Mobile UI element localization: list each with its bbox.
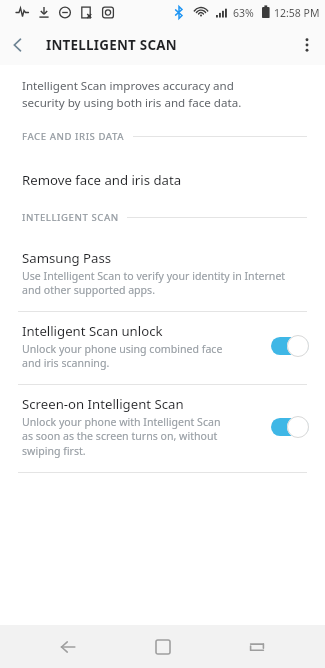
button[interactable]: Screen-on Intelligent Scan bbox=[0, 385, 325, 472]
staticText: 63% bbox=[233, 6, 254, 20]
staticText: FACE AND IRIS DATA bbox=[22, 130, 125, 143]
staticText: Intelligent Scan unlock bbox=[22, 322, 163, 340]
button[interactable]: Recent apps bbox=[231, 625, 283, 668]
staticText: Unlock your phone with Intelligent Scan … bbox=[22, 415, 221, 458]
staticText: Intelligent Scan improves accuracy and s… bbox=[22, 78, 242, 110]
button[interactable]: Back bbox=[42, 625, 94, 668]
button[interactable]: Home bbox=[137, 625, 189, 668]
button[interactable]: Toggle bbox=[271, 335, 309, 357]
staticText: Samsung Pass bbox=[22, 249, 112, 267]
button[interactable]: Toggle bbox=[271, 416, 309, 438]
button[interactable]: More options bbox=[289, 27, 325, 63]
button[interactable]: Back bbox=[0, 27, 36, 63]
staticText: 12:58 PM bbox=[274, 6, 320, 20]
staticText: INTELLIGENT SCAN bbox=[22, 211, 119, 224]
button[interactable]: Samsung Pass bbox=[0, 240, 325, 311]
button[interactable]: Intelligent Scan unlock bbox=[0, 312, 325, 384]
staticText: Use Intelligent Scan to verify your iden… bbox=[22, 269, 286, 297]
staticText: Remove face and iris data bbox=[22, 171, 182, 189]
staticText: INTELLIGENT SCAN bbox=[46, 36, 177, 54]
button[interactable]: Remove face and iris data bbox=[0, 163, 325, 197]
staticText: Screen-on Intelligent Scan bbox=[22, 395, 184, 413]
staticText: Unlock your phone using combined face an… bbox=[22, 342, 223, 370]
